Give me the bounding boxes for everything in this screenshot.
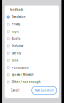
staticText: Punctuation bbox=[12, 66, 29, 69]
button[interactable]: Other / not enough bbox=[7, 78, 57, 86]
staticText: Speaker Mismatch bbox=[12, 73, 34, 76]
button[interactable]: Tone bbox=[7, 57, 57, 64]
button[interactable]: Translation bbox=[7, 13, 57, 21]
staticText: Audio bbox=[12, 37, 21, 40]
staticText: Inclusive bbox=[12, 44, 24, 48]
staticText: Translation bbox=[12, 15, 26, 19]
staticText: Other / not enough bbox=[12, 80, 41, 84]
button[interactable]: Punctuation bbox=[7, 64, 57, 71]
staticText: Tone bbox=[12, 59, 19, 62]
button[interactable]: Cancel bbox=[7, 86, 23, 95]
button[interactable]: Inclusive bbox=[7, 42, 57, 49]
button[interactable]: Audio bbox=[7, 35, 57, 42]
staticText: Feedback bbox=[9, 8, 22, 11]
button[interactable]: Latency bbox=[7, 49, 57, 57]
staticText: Topic bbox=[12, 30, 19, 33]
staticText: Latency bbox=[12, 51, 21, 55]
staticText: Cancel bbox=[11, 89, 20, 92]
button[interactable]: Next question bbox=[32, 86, 57, 95]
button[interactable]: Speaker Mismatch bbox=[7, 71, 57, 78]
staticText: Next question bbox=[35, 89, 54, 92]
button[interactable]: Topic bbox=[7, 28, 57, 35]
button[interactable]: Privacy bbox=[7, 21, 57, 28]
staticText: Privacy bbox=[12, 22, 20, 26]
